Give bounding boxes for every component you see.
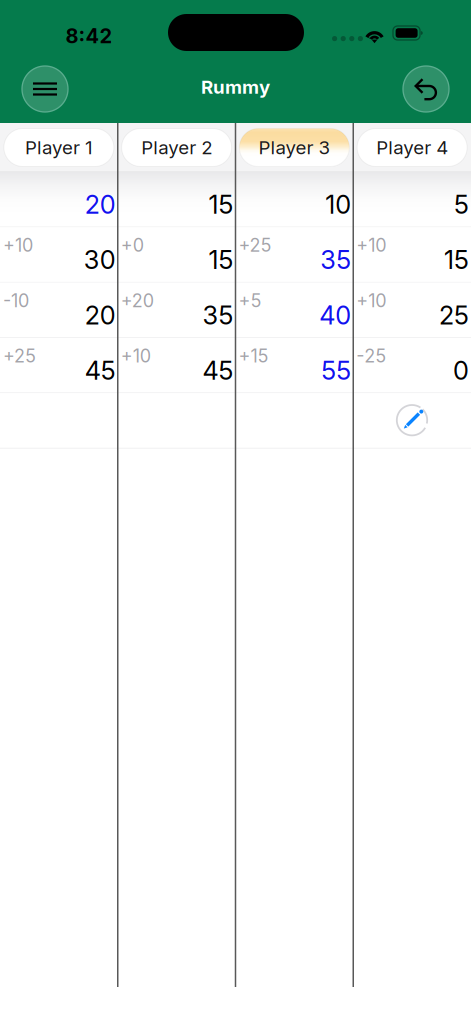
staticText: 10 — [325, 189, 351, 220]
button[interactable]: Undo — [403, 66, 449, 112]
staticText: -25 — [356, 345, 386, 367]
staticText: +10 — [121, 345, 151, 367]
staticText: -10 — [3, 290, 29, 311]
staticText: +20 — [121, 290, 154, 311]
staticText: 30 — [84, 245, 116, 275]
staticText: 8:42 — [65, 24, 112, 48]
staticText: 40 — [319, 300, 351, 331]
staticText: 20 — [85, 189, 116, 220]
button[interactable]: Player 3 — [235, 123, 353, 172]
staticText: Player 4 — [376, 136, 448, 159]
staticText: 25 — [439, 300, 469, 331]
button[interactable]: Edit score — [395, 403, 429, 437]
staticText: 35 — [320, 245, 351, 275]
staticText: 20 — [85, 300, 116, 331]
staticText: +5 — [238, 290, 261, 311]
staticText: +0 — [121, 234, 144, 256]
button[interactable]: Player 2 — [118, 123, 236, 172]
staticText: 35 — [202, 300, 233, 331]
staticText: Player 2 — [141, 136, 212, 159]
staticText: +15 — [238, 345, 268, 367]
staticText: 45 — [85, 355, 116, 386]
button[interactable]: Player 1 — [0, 123, 118, 172]
staticText: 55 — [321, 355, 351, 386]
staticText: 5 — [454, 189, 469, 220]
staticText: +25 — [3, 345, 36, 367]
staticText: Player 1 — [25, 136, 93, 159]
staticText: +10 — [3, 234, 33, 256]
staticText: +10 — [356, 290, 386, 311]
staticText: Player 3 — [258, 136, 330, 159]
staticText: 45 — [202, 355, 233, 386]
staticText: Rummy — [201, 76, 270, 98]
staticText: 15 — [208, 245, 233, 275]
staticText: 15 — [208, 189, 233, 220]
button[interactable]: Player 4 — [353, 123, 471, 172]
staticText: 15 — [444, 245, 469, 275]
staticText: +25 — [238, 234, 271, 256]
staticText: +10 — [356, 234, 386, 256]
button[interactable]: Menu — [22, 66, 68, 112]
staticText: 0 — [453, 355, 469, 386]
